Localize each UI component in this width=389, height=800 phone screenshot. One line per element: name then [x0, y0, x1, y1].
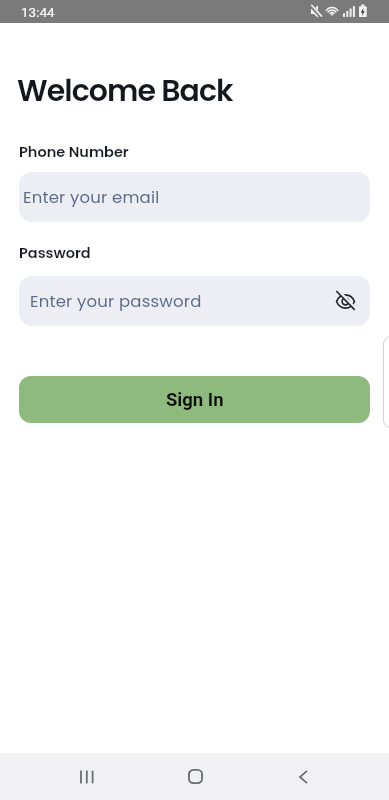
button[interactable]: Sign In — [19, 376, 370, 423]
button[interactable]: Enter your email — [19, 172, 370, 222]
staticText: Welcome Back — [17, 70, 233, 112]
button[interactable]: Enter your password — [19, 276, 370, 326]
staticText: Password — [19, 243, 91, 263]
button[interactable] — [335, 291, 356, 312]
button[interactable] — [33, 753, 141, 800]
staticText: Sign In — [166, 389, 224, 411]
staticText: Enter your email — [23, 186, 160, 209]
staticText: Enter your password — [30, 290, 202, 313]
button[interactable] — [141, 753, 249, 800]
button[interactable] — [249, 753, 357, 800]
staticText: 13:44 — [21, 4, 55, 20]
staticText: Phone Number — [19, 142, 129, 162]
